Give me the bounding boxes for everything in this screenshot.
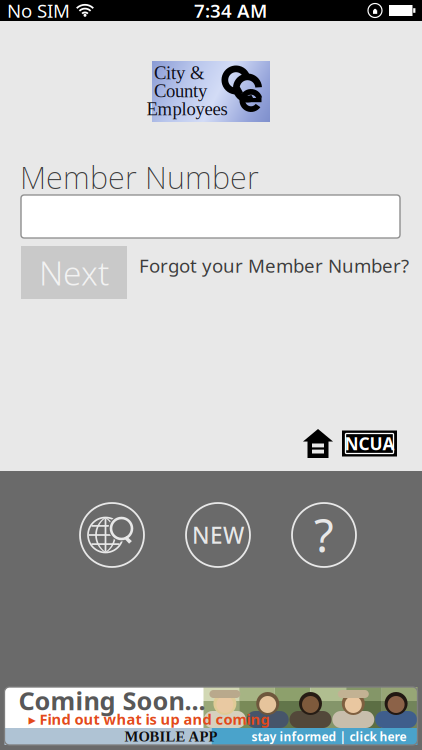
staticText: Member Number bbox=[20, 157, 259, 197]
staticText: Next bbox=[39, 250, 109, 295]
staticText: County bbox=[154, 81, 207, 101]
staticText: Coming Soon... bbox=[18, 684, 205, 717]
staticText: ? bbox=[314, 505, 334, 565]
staticText: NCUA bbox=[344, 432, 394, 455]
staticText: City & bbox=[154, 63, 205, 83]
staticText: Forgot your Member Number? bbox=[139, 253, 409, 278]
staticText: stay informed | click here bbox=[251, 728, 406, 744]
staticText: NEW bbox=[192, 520, 244, 550]
button[interactable]: Help bbox=[292, 503, 356, 567]
button[interactable]: Coming Soon... bbox=[4, 687, 417, 745]
button[interactable]: What's New bbox=[186, 503, 250, 567]
staticText: ▸ Find out what is up and coming bbox=[28, 709, 269, 729]
button[interactable]: Search bbox=[80, 503, 144, 567]
staticText: MOBILE APP bbox=[124, 728, 217, 745]
button[interactable]: Next bbox=[21, 246, 127, 299]
staticText: 7:34 AM bbox=[194, 0, 267, 23]
button[interactable]: Forgot your Member Number? bbox=[127, 260, 409, 285]
staticText: No SIM bbox=[7, 0, 70, 23]
staticText: Employees bbox=[146, 99, 227, 119]
